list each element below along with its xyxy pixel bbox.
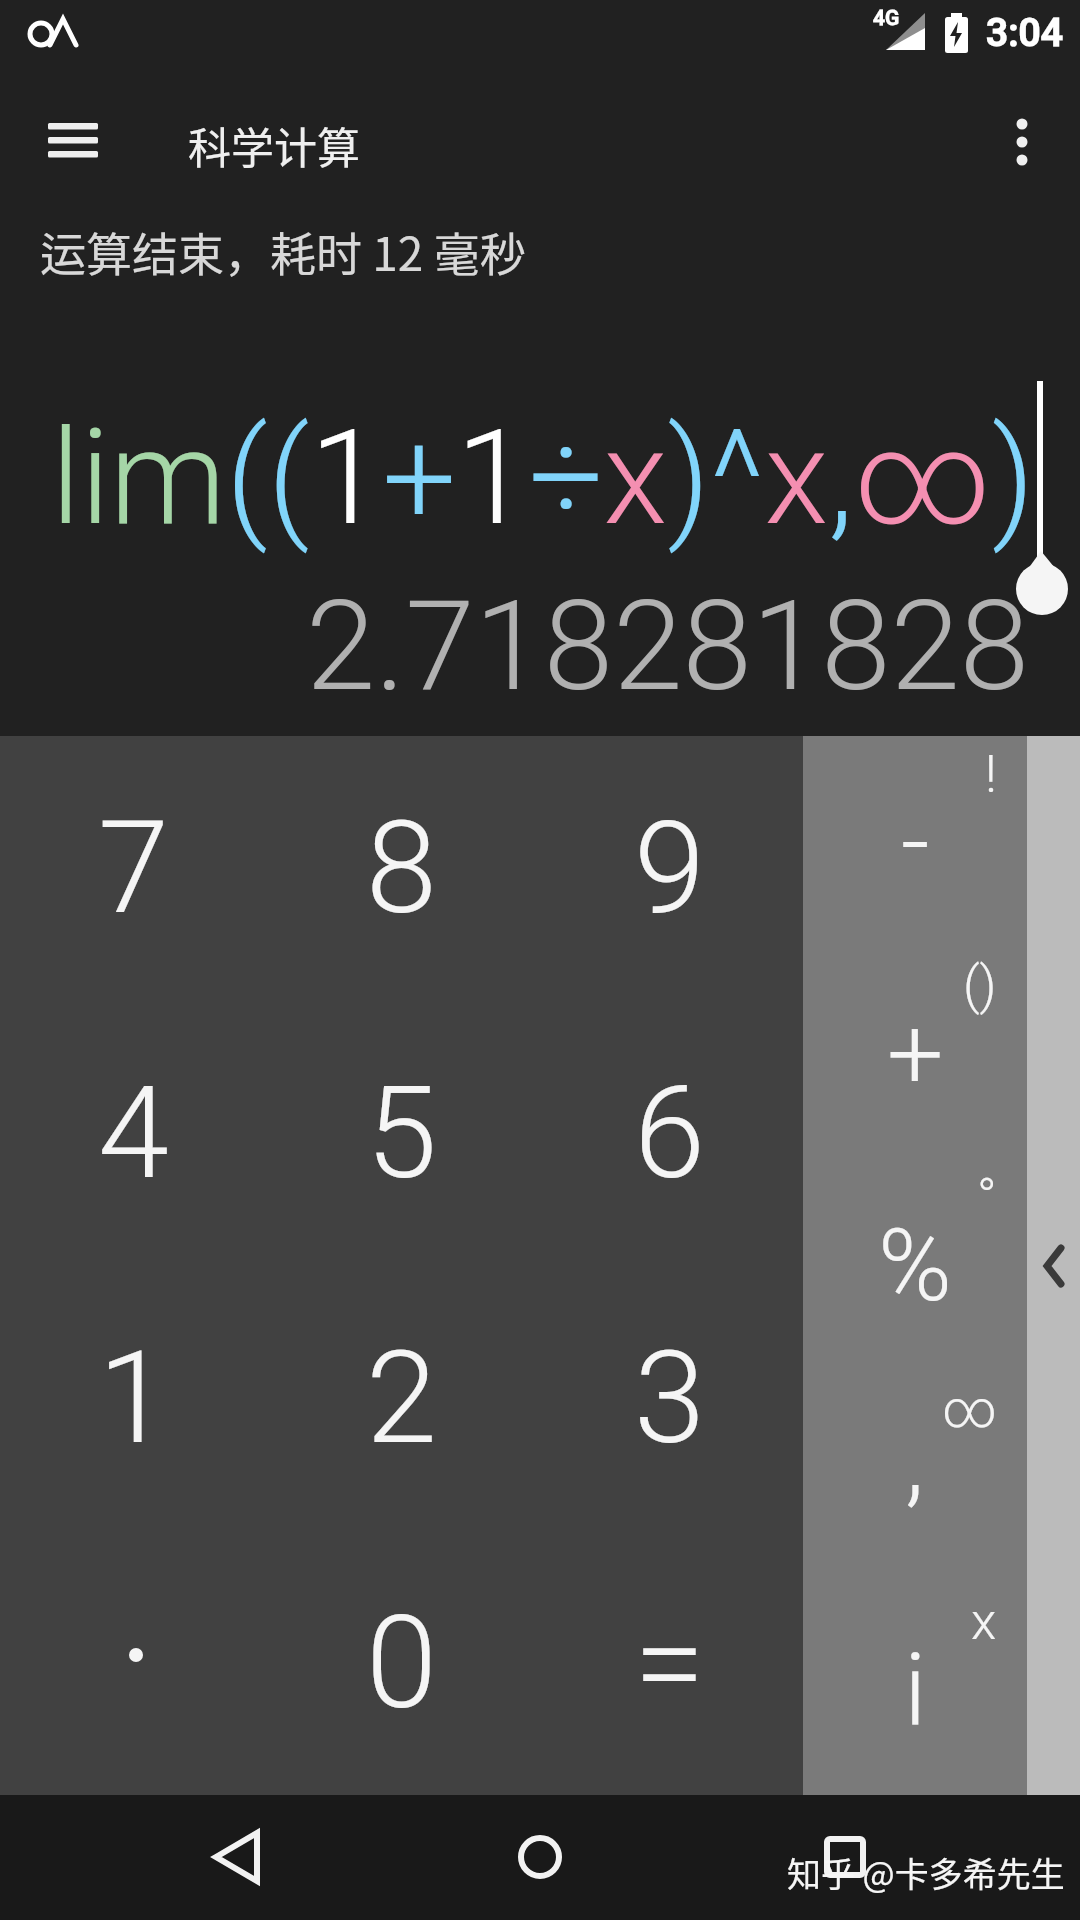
staticText: 7 [98, 793, 169, 943]
staticText: 3 [634, 1323, 705, 1473]
staticText: = [634, 1588, 705, 1738]
staticText: 9 [634, 793, 705, 943]
staticText: ! [985, 744, 997, 805]
staticText: 1 [98, 1323, 169, 1473]
staticText: x [971, 1591, 997, 1652]
staticText: 3:04 [986, 10, 1063, 56]
staticText: lim((1+1÷x)^x,∞) [51, 401, 1035, 555]
staticText: 知乎 @卡多希先生 [787, 1848, 1065, 1897]
staticText: 8 [366, 793, 437, 943]
staticText: - [901, 783, 930, 900]
staticText: 4 [98, 1058, 169, 1208]
staticText: 运算结束，耗时 12 毫秒 [40, 218, 526, 285]
staticText: ° [977, 1167, 997, 1228]
staticText: () [963, 955, 997, 1016]
staticText: 6 [634, 1058, 705, 1208]
staticText: , [905, 1401, 925, 1518]
staticText: 0 [366, 1588, 437, 1738]
staticText: 2 [366, 1323, 437, 1473]
staticText: 科学计算 [188, 114, 360, 176]
staticText: 4G [873, 6, 900, 31]
staticText: i [904, 1631, 927, 1748]
staticText: ∞ [942, 1379, 997, 1440]
staticText: % [878, 1207, 952, 1324]
staticText: 2.718281828 [306, 573, 1030, 719]
staticText: 5 [366, 1058, 437, 1208]
staticText: + [887, 995, 944, 1112]
